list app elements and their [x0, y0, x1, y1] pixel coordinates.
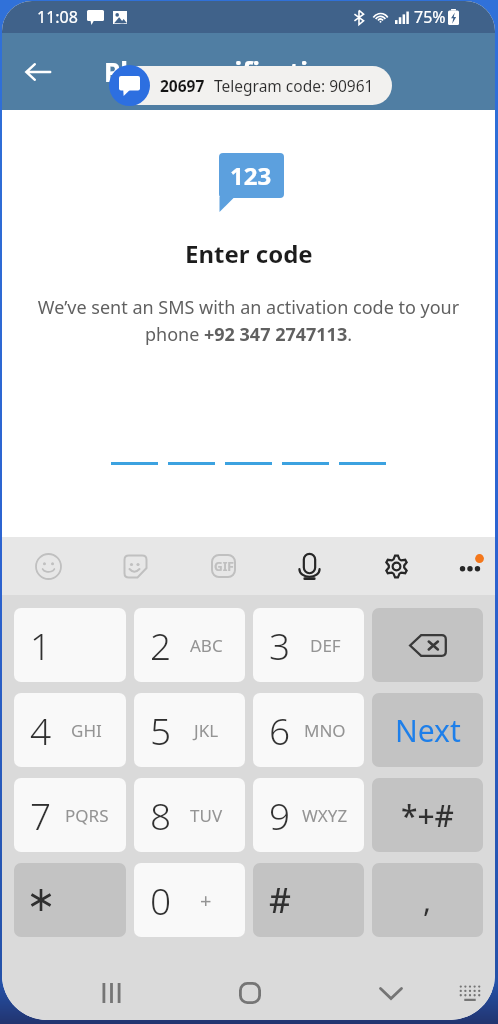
button[interactable]: *+# — [372, 778, 483, 852]
staticText: Next — [395, 710, 461, 751]
button[interactable]: 3 — [253, 608, 364, 682]
staticText: 9 — [269, 790, 291, 840]
button[interactable]: Code digit 1 — [111, 441, 158, 465]
button[interactable]: 8 — [134, 778, 245, 852]
staticText: *+# — [401, 795, 454, 836]
staticText: 7 — [30, 790, 52, 840]
button[interactable]: Code digit 3 — [225, 441, 272, 465]
staticText: 20697 — [160, 75, 205, 96]
staticText: JKL — [194, 719, 219, 742]
staticText: , — [423, 880, 432, 921]
staticText: 1 — [30, 620, 52, 670]
staticText: GIF — [214, 558, 234, 574]
staticText: TUV — [190, 804, 223, 827]
staticText: WXYZ — [302, 804, 348, 827]
button[interactable]: Recents — [89, 971, 133, 1015]
staticText: 4 — [30, 705, 52, 755]
button[interactable]: Code digit 5 — [339, 441, 386, 465]
button[interactable]: Back — [16, 50, 60, 94]
button[interactable]: Hide keyboard — [448, 971, 492, 1015]
staticText: 123 — [230, 159, 272, 192]
staticText: Phone verification — [104, 54, 342, 89]
button[interactable]: more — [444, 537, 495, 595]
staticText: 11:08 — [37, 6, 78, 28]
staticText: # — [269, 877, 291, 923]
button[interactable]: 5 — [134, 693, 245, 767]
button[interactable]: 9 — [253, 778, 364, 852]
button[interactable]: 7 — [14, 778, 126, 852]
button[interactable]: 20697 — [117, 66, 392, 105]
button[interactable]: Code digit 2 — [168, 441, 215, 465]
staticText: We’ve sent an SMS with an activation cod… — [36, 295, 461, 346]
button[interactable]: settings — [370, 537, 422, 595]
button[interactable]: Back — [369, 971, 413, 1015]
button[interactable]: mic — [283, 537, 335, 595]
button[interactable]: Next — [372, 693, 483, 767]
staticText: 8 — [150, 790, 172, 840]
staticText: 2 — [150, 620, 172, 670]
button[interactable]: sticker — [109, 537, 161, 595]
button[interactable]: 6 — [253, 693, 364, 767]
button[interactable]: , — [372, 863, 483, 937]
staticText: 0 — [150, 875, 172, 925]
button[interactable]: Code digit 4 — [282, 441, 329, 465]
button[interactable]: Messages — [109, 65, 150, 106]
button[interactable] — [14, 863, 126, 937]
button[interactable]: 1 — [14, 608, 126, 682]
staticText: 3 — [269, 620, 291, 670]
staticText: Telegram code: 90961 — [214, 75, 374, 96]
button[interactable]: 2 — [134, 608, 245, 682]
staticText: 6 — [269, 705, 291, 755]
button[interactable]: 4 — [14, 693, 126, 767]
button[interactable]: Home — [228, 971, 272, 1015]
staticText: DEF — [310, 634, 341, 657]
button[interactable]: 0 — [134, 863, 245, 937]
staticText: 5 — [150, 705, 172, 755]
button[interactable]: # — [253, 863, 364, 937]
button[interactable]: emoji — [22, 537, 74, 595]
staticText: 75% — [414, 6, 446, 28]
button[interactable]: Backspace — [372, 608, 483, 682]
staticText: MNO — [304, 719, 346, 742]
button[interactable]: gif — [197, 537, 249, 595]
staticText: PQRS — [65, 804, 109, 827]
staticText: ABC — [190, 634, 223, 657]
staticText: Enter code — [185, 237, 313, 270]
staticText: GHI — [71, 719, 102, 742]
staticText: + — [200, 887, 212, 914]
